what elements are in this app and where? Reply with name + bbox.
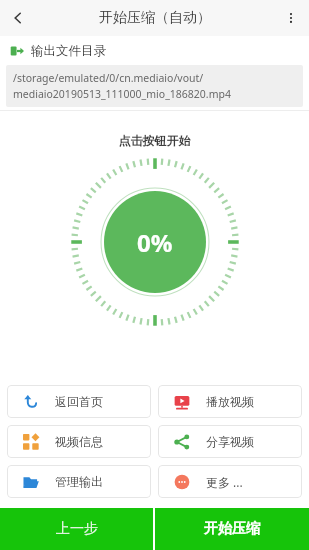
staticText: mediaio20190513_111000_mio_186820.mp4 bbox=[13, 87, 231, 101]
button[interactable]: 上一步 bbox=[0, 508, 153, 550]
staticText: 点击按钮开始 bbox=[0, 133, 309, 148]
staticText: 播放视频 bbox=[206, 394, 254, 409]
staticText: 开始压缩（自动） bbox=[99, 9, 211, 27]
staticText: 更多 ... bbox=[206, 474, 243, 490]
staticText: 返回首页 bbox=[55, 394, 103, 409]
button[interactable]: 分享视频 bbox=[158, 425, 302, 458]
button[interactable]: 更多 ... bbox=[158, 465, 302, 498]
button[interactable]: 开始压缩 bbox=[155, 508, 309, 550]
staticText: 0% bbox=[137, 226, 173, 259]
staticText: 上一步 bbox=[56, 520, 98, 538]
button[interactable]: Back bbox=[0, 0, 36, 36]
staticText: 管理输出 bbox=[55, 474, 103, 489]
staticText: 输出文件目录 bbox=[31, 43, 106, 59]
button[interactable]: 播放视频 bbox=[158, 385, 302, 418]
staticText: /storage/emulated/0/cn.mediaio/vout/ bbox=[13, 71, 204, 85]
button[interactable]: 管理输出 bbox=[7, 465, 151, 498]
staticText: 开始压缩 bbox=[204, 520, 260, 538]
button[interactable]: 返回首页 bbox=[7, 385, 151, 418]
button[interactable]: More options bbox=[273, 0, 309, 36]
button[interactable]: 视频信息 bbox=[7, 425, 151, 458]
staticText: 分享视频 bbox=[206, 434, 254, 449]
staticText: 视频信息 bbox=[55, 434, 103, 449]
